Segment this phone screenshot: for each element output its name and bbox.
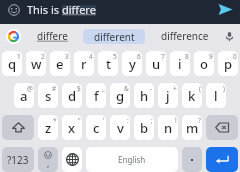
staticText: different xyxy=(94,30,135,44)
button[interactable]: m xyxy=(182,115,202,140)
staticText: ' xyxy=(103,116,105,125)
button[interactable]: a xyxy=(14,83,34,108)
button[interactable]: Emoji xyxy=(0,0,27,19)
staticText: differe xyxy=(62,2,96,17)
staticText: " xyxy=(78,116,81,125)
button[interactable]: Send xyxy=(210,0,240,19)
staticText: l xyxy=(214,87,218,105)
staticText: 0 xyxy=(233,52,237,61)
staticText: 2 xyxy=(41,52,45,61)
button[interactable]: Voice input xyxy=(218,24,240,48)
button[interactable]: v xyxy=(110,115,130,140)
staticText: x xyxy=(68,119,76,137)
button[interactable]: e xyxy=(50,51,70,76)
staticText: a xyxy=(20,87,28,105)
button[interactable]: b xyxy=(134,115,154,140)
staticText: 6 xyxy=(137,52,141,61)
button[interactable]: u xyxy=(146,51,166,76)
staticText: g xyxy=(116,87,125,105)
staticText: ! xyxy=(175,116,177,125)
staticText: t xyxy=(106,55,111,73)
button[interactable]: z xyxy=(38,115,58,140)
staticText: o xyxy=(200,55,208,73)
staticText: English xyxy=(118,154,146,165)
staticText: j xyxy=(166,87,170,105)
staticText: v xyxy=(117,119,124,137)
staticText: ) xyxy=(223,84,225,93)
button[interactable]: f xyxy=(86,83,106,108)
button[interactable]: Backspace xyxy=(206,115,238,140)
staticText: ? xyxy=(198,116,201,125)
staticText: 3 xyxy=(65,52,69,61)
button[interactable]: different xyxy=(83,29,145,44)
staticText: 4 xyxy=(89,52,93,61)
staticText: , xyxy=(47,157,50,169)
staticText: w xyxy=(31,55,42,73)
staticText: k xyxy=(188,87,196,105)
button[interactable]: c xyxy=(86,115,106,140)
button[interactable]: g xyxy=(110,83,130,108)
button[interactable]: w xyxy=(26,51,46,76)
staticText: n xyxy=(164,119,173,137)
button[interactable]: ?123 xyxy=(2,147,34,172)
staticText: m xyxy=(186,119,199,137)
button[interactable]: Emoji and comma xyxy=(38,147,58,172)
button[interactable]: Change keyboard language xyxy=(62,147,82,172)
button[interactable]: Google search xyxy=(0,24,27,48)
staticText: This is xyxy=(27,2,62,17)
button[interactable]: s xyxy=(38,83,58,108)
button[interactable] xyxy=(182,147,202,172)
staticText: e xyxy=(56,55,64,73)
staticText: $ xyxy=(77,84,81,93)
staticText: ?123 xyxy=(7,153,29,167)
staticText: p xyxy=(224,55,233,73)
staticText: 1 xyxy=(17,52,21,61)
button[interactable]: h xyxy=(134,83,154,108)
staticText: r xyxy=(81,55,87,73)
staticText: ( xyxy=(199,84,201,93)
staticText: 5 xyxy=(113,52,117,61)
staticText: h xyxy=(140,87,149,105)
button[interactable]: l xyxy=(206,83,226,108)
staticText: u xyxy=(152,55,161,73)
staticText: f xyxy=(94,87,99,105)
staticText: c xyxy=(93,119,100,137)
button[interactable]: difference xyxy=(145,24,218,48)
staticText: - xyxy=(150,84,153,93)
staticText: s xyxy=(45,87,52,105)
staticText: q xyxy=(8,55,17,73)
button[interactable]: x xyxy=(62,115,82,140)
button[interactable]: o xyxy=(194,51,214,76)
button[interactable]: n xyxy=(158,115,178,140)
staticText: + xyxy=(173,84,177,93)
staticText: 8 xyxy=(185,52,189,61)
button[interactable]: q xyxy=(2,51,22,76)
staticText: differe xyxy=(37,29,68,43)
button[interactable]: j xyxy=(158,83,178,108)
button[interactable]: i xyxy=(170,51,190,76)
staticText: 9 xyxy=(209,52,213,61)
staticText: ; xyxy=(151,116,153,125)
button[interactable]: p xyxy=(218,51,238,76)
button[interactable]: English xyxy=(86,147,178,172)
staticText: b xyxy=(140,119,149,137)
staticText: i xyxy=(178,55,182,73)
button[interactable]: k xyxy=(182,83,202,108)
button[interactable]: r xyxy=(74,51,94,76)
staticText: @ xyxy=(27,84,33,93)
staticText: : xyxy=(127,116,129,125)
button[interactable]: Shift xyxy=(2,115,34,140)
staticText: * xyxy=(53,116,57,125)
button[interactable]: y xyxy=(122,51,142,76)
button[interactable]: t xyxy=(98,51,118,76)
button[interactable]: d xyxy=(62,83,82,108)
button[interactable]: Enter xyxy=(206,147,238,172)
staticText: & xyxy=(124,84,129,93)
staticText: _ xyxy=(102,84,105,93)
staticText: difference xyxy=(161,29,209,43)
staticText: # xyxy=(52,84,57,93)
staticText: y xyxy=(129,55,136,73)
staticText: 7 xyxy=(161,52,165,61)
staticText: d xyxy=(68,87,77,105)
button[interactable]: differe xyxy=(27,24,78,48)
